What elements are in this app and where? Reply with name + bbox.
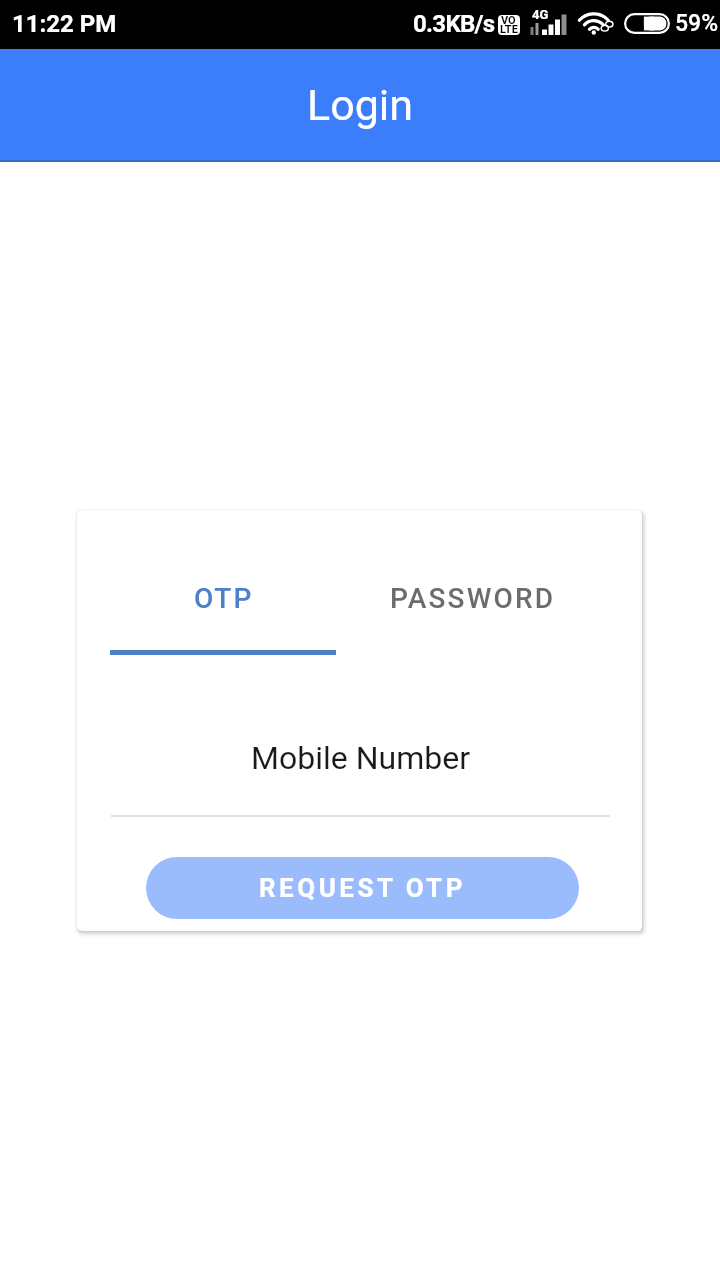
button[interactable]: OTP xyxy=(99,572,348,655)
staticText: REQUEST OTP xyxy=(259,873,466,903)
staticText: 11:22 PM xyxy=(12,10,117,38)
other: VoLTE enabled xyxy=(498,15,520,35)
staticText: VO xyxy=(501,15,516,27)
staticText: PASSWORD xyxy=(390,582,556,615)
other: 4G mobile signal strength xyxy=(528,8,572,36)
button[interactable]: Mobile Number xyxy=(111,728,610,817)
other: Battery 59 percent xyxy=(624,13,670,34)
button[interactable]: PASSWORD xyxy=(348,572,597,655)
staticText: 4G xyxy=(532,7,549,22)
staticText: LTE xyxy=(500,23,518,35)
staticText: 0.3KB/s xyxy=(413,10,495,38)
staticText: 59% xyxy=(675,10,719,37)
staticText: Mobile Number xyxy=(111,739,610,777)
button[interactable]: REQUEST OTP xyxy=(146,857,579,919)
staticText: OTP xyxy=(194,582,254,615)
other: Wi-Fi connected xyxy=(581,12,613,35)
staticText: Login xyxy=(307,80,414,130)
